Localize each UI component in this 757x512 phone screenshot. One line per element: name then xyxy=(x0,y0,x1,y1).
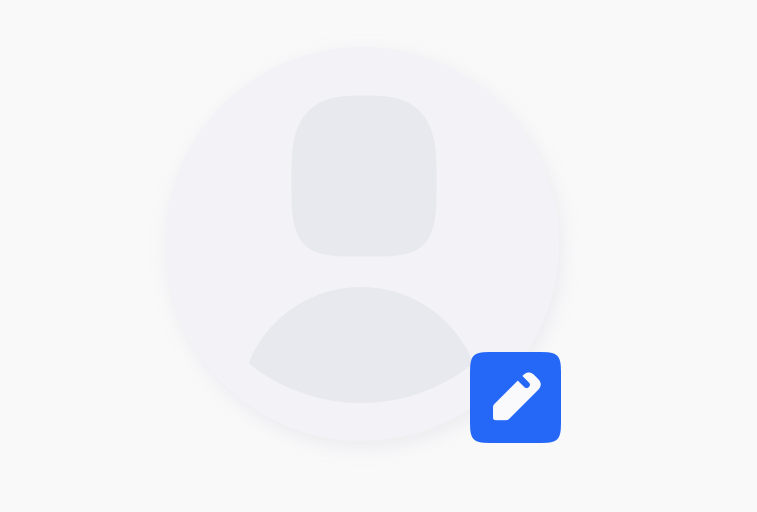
button[interactable]: Edit profile photo xyxy=(0,0,757,512)
